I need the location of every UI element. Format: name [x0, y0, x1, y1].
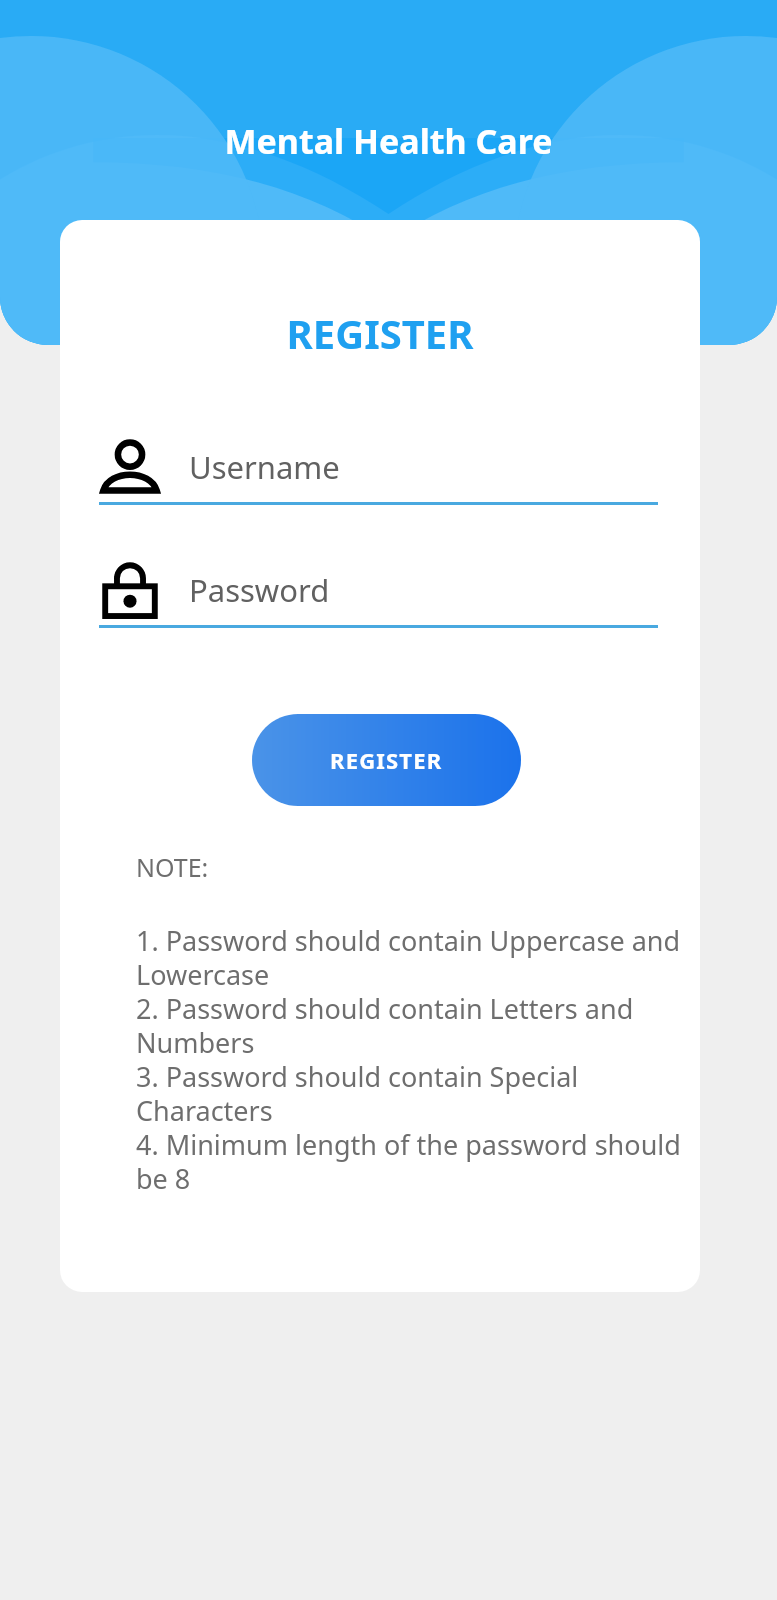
staticText: REGISTER	[330, 745, 443, 775]
staticText: Mental Health Care	[0, 118, 777, 164]
other: Password	[99, 559, 161, 621]
staticText: Password	[189, 569, 330, 611]
staticText: REGISTER	[60, 306, 700, 360]
staticText: 1. Password should contain Uppercase and…	[136, 922, 682, 1197]
staticText: NOTE:	[136, 850, 209, 884]
button[interactable]: REGISTER	[252, 714, 521, 806]
other: Username	[99, 436, 161, 498]
button[interactable]: Password	[60, 559, 700, 628]
staticText: Username	[189, 446, 340, 488]
button[interactable]: Username	[60, 436, 700, 505]
